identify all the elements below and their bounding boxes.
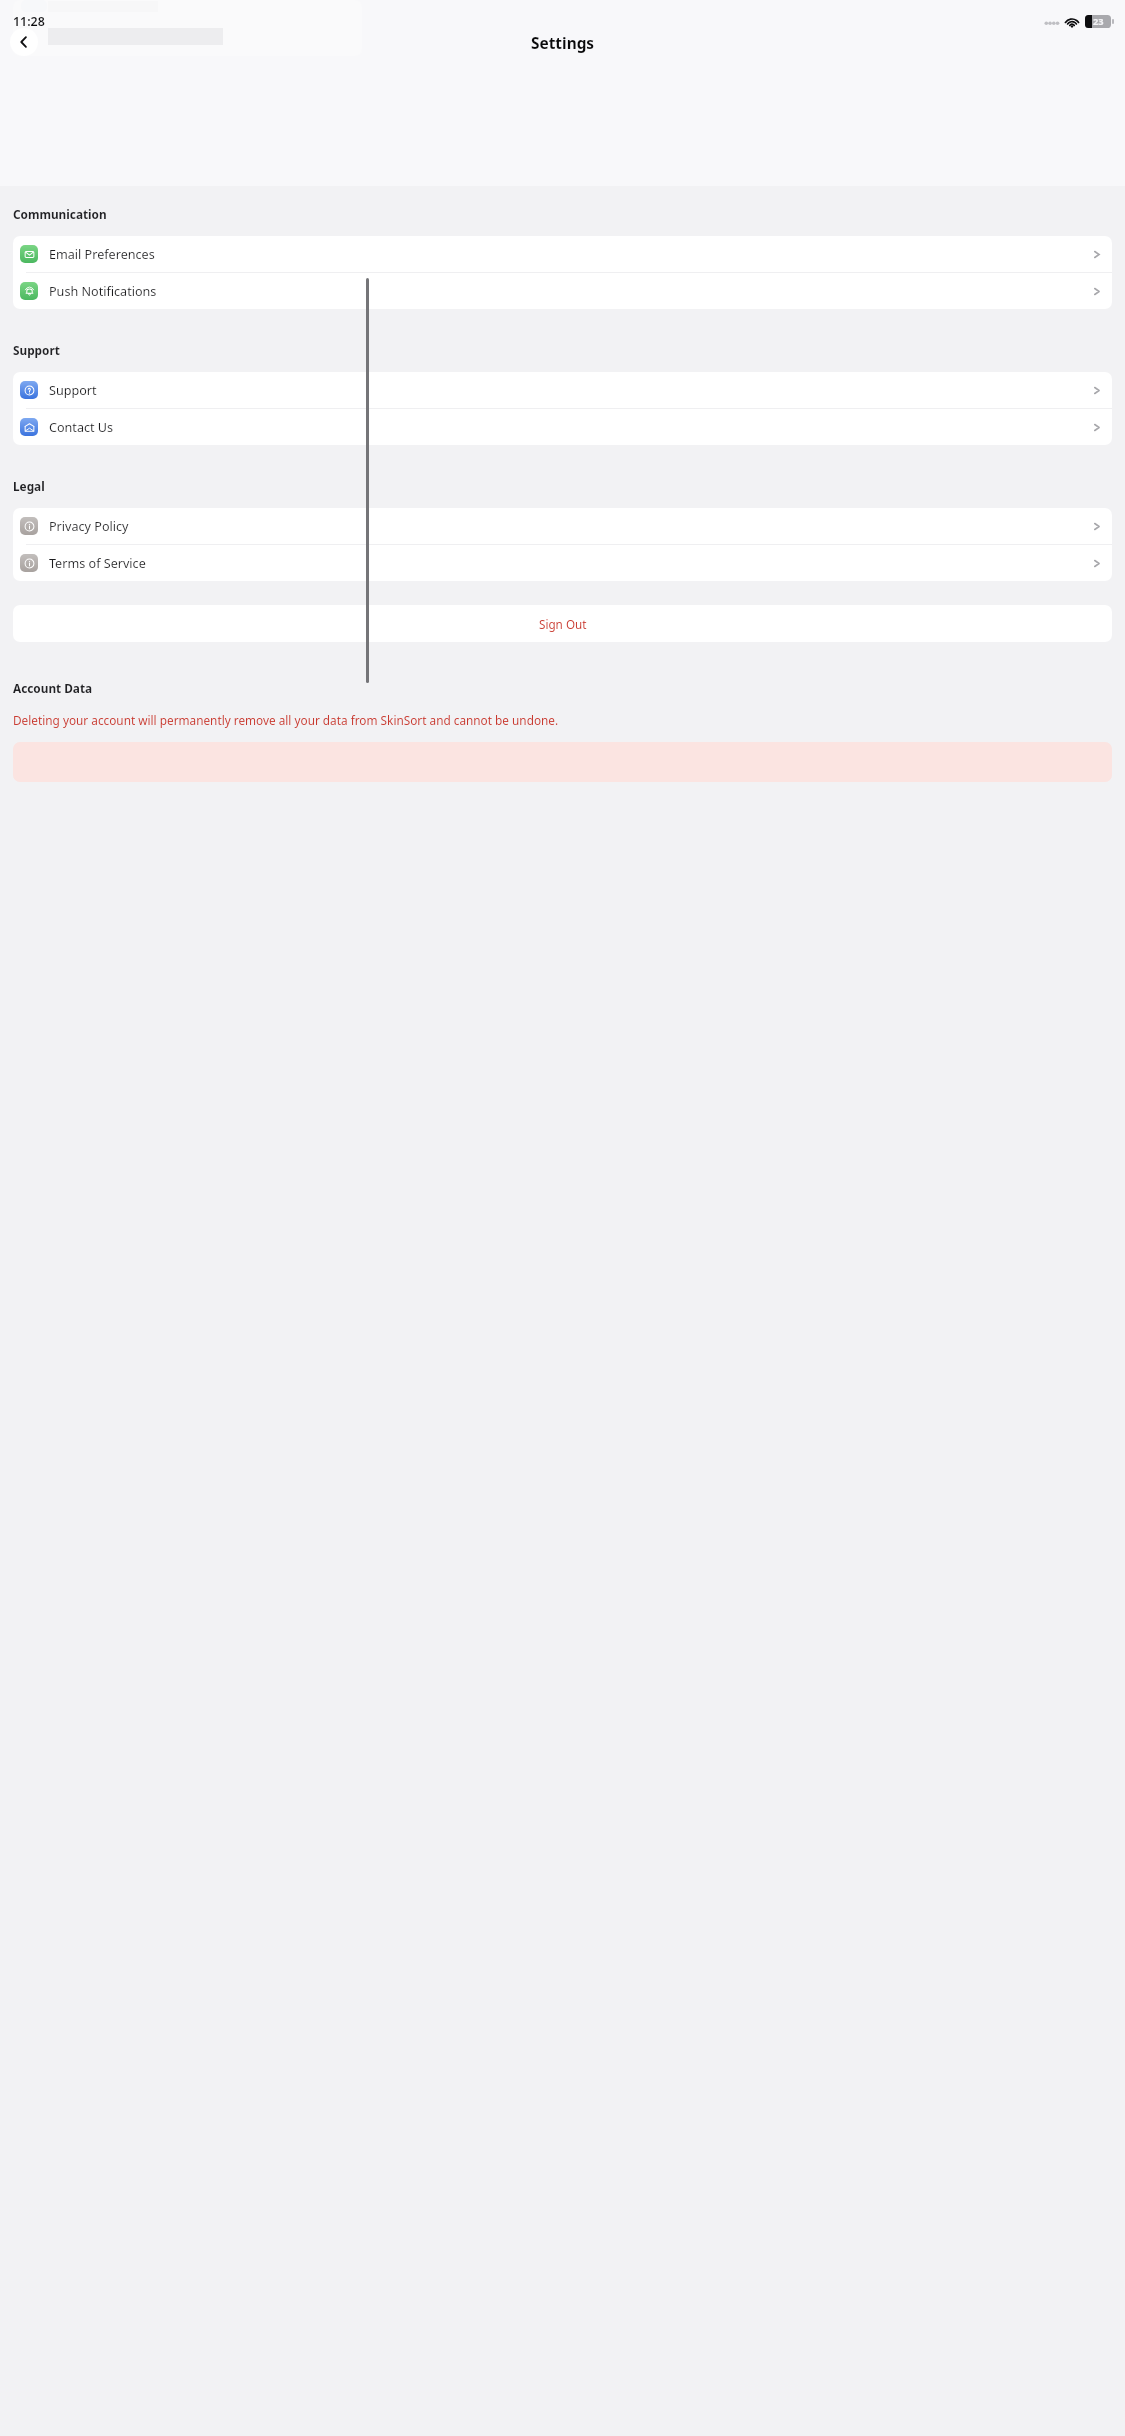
button[interactable]: Terms of Service — [13, 545, 1112, 581]
staticText: Terms of Service — [49, 555, 146, 572]
staticText: Sign Out — [539, 616, 587, 632]
staticText: Settings — [531, 33, 595, 54]
button[interactable]: Push Notifications — [13, 273, 1112, 309]
staticText: Communication — [13, 206, 107, 222]
staticText: Deleting your account will permanently r… — [13, 712, 559, 728]
staticText: 11:28 — [13, 13, 45, 30]
button[interactable]: Contact Us — [13, 409, 1112, 445]
staticText: Contact Us — [49, 419, 114, 436]
staticText: Legal — [13, 478, 45, 494]
staticText: Email Preferences — [49, 246, 155, 263]
button[interactable]: Email Preferences — [13, 236, 1112, 272]
button[interactable]: Back — [10, 28, 38, 56]
button[interactable]: Privacy Policy — [13, 508, 1112, 544]
staticText: 23 — [1093, 15, 1104, 28]
staticText: Push Notifications — [49, 283, 157, 300]
staticText: Support — [49, 382, 97, 399]
staticText: Support — [13, 342, 60, 358]
button[interactable]: Sign Out — [13, 605, 1112, 642]
staticText: Account Data — [13, 680, 93, 696]
button[interactable]: Support — [13, 372, 1112, 408]
staticText: Privacy Policy — [49, 518, 129, 535]
